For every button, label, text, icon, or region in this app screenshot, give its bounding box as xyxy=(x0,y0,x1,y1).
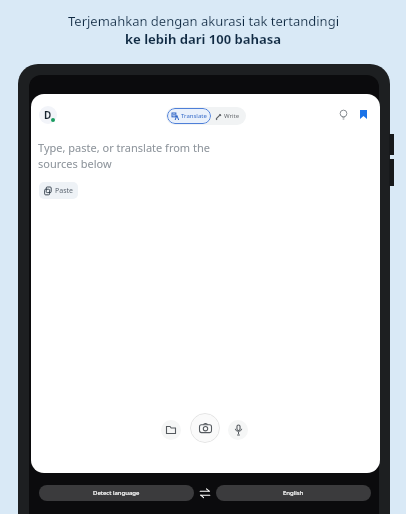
staticText: Translate xyxy=(181,112,207,120)
staticText: Write xyxy=(224,112,240,120)
staticText: D xyxy=(44,108,52,122)
staticText: Paste xyxy=(55,186,73,196)
staticText: ke lebih dari 100 bahasa xyxy=(125,30,282,48)
staticText: English xyxy=(283,489,304,497)
staticText: Detect language xyxy=(93,489,140,497)
staticText: Type, paste, or translate from the sourc… xyxy=(38,140,210,171)
staticText: Terjemahkan dengan akurasi tak tertandin… xyxy=(68,12,339,30)
